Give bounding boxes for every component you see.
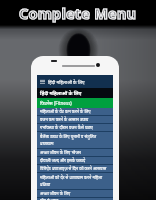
staticText: बैलेंस्ड डायट के लिए यूनानी व संतुलित प्… bbox=[40, 134, 110, 147]
button[interactable]: फिटनेस (Fitness) bbox=[37, 98, 113, 108]
button[interactable]: योग के लाभ bbox=[37, 198, 113, 200]
button[interactable]: अच्छा जीवन के लिए bbox=[37, 190, 113, 197]
button[interactable]: दीवाली जल्द और इसके फायदे bbox=[37, 157, 113, 164]
staticText: अच्छा जीवन के लिए bbox=[40, 191, 71, 197]
button[interactable]: पिरिऐड प्रणालाइज़ से दिन को करने आसपास bbox=[37, 165, 113, 172]
staticText: हिंदी महिलाओं के लिए bbox=[48, 79, 85, 85]
staticText: योग के लाभ bbox=[40, 198, 59, 200]
staticText: हिंदी महिलाओं के लिए bbox=[40, 90, 82, 97]
staticText: महिलाओं के वेट कम करने के लिए bbox=[40, 109, 91, 115]
button[interactable]: Open navigation menu bbox=[37, 75, 113, 88]
staticText: महिलाओं को देर से प्राणायाम करने महिला प… bbox=[40, 175, 110, 188]
staticText: Complete Menu bbox=[19, 3, 137, 23]
staticText: गर्भावस्था के दौरान वजन कैसे घटाए bbox=[40, 125, 93, 131]
button[interactable]: Complete Menu bbox=[0, 0, 156, 26]
button[interactable]: हिंदी महिलाओं के लिए bbox=[37, 88, 113, 98]
button[interactable]: अच्छा जीवन के लिए भोजन bbox=[37, 149, 113, 156]
staticText: Complete Menu bbox=[19, 3, 137, 23]
staticText: वजन कम करने के आसान उपाय bbox=[40, 117, 89, 123]
button[interactable]: महिलाओं के वेट कम करने के लिए bbox=[37, 108, 113, 115]
staticText: फिटनेस (Fitness) bbox=[40, 100, 72, 106]
other: Open navigation menu bbox=[40, 79, 45, 84]
button[interactable]: बैलेंस्ड डायट के लिए यूनानी व संतुलित प्… bbox=[37, 132, 113, 148]
staticText: दीवाली जल्द और इसके फायदे bbox=[40, 158, 86, 164]
staticText: पिरिऐड प्रणालाइज़ से दिन को करने आसपास bbox=[40, 166, 107, 172]
button[interactable]: महिलाओं को देर से प्राणायाम करने महिला प… bbox=[37, 173, 113, 189]
staticText: अच्छा जीवन के लिए भोजन bbox=[40, 150, 81, 156]
button[interactable]: गर्भावस्था के दौरान वजन कैसे घटाए bbox=[37, 124, 113, 131]
button[interactable]: वजन कम करने के आसान उपाय bbox=[37, 116, 113, 123]
